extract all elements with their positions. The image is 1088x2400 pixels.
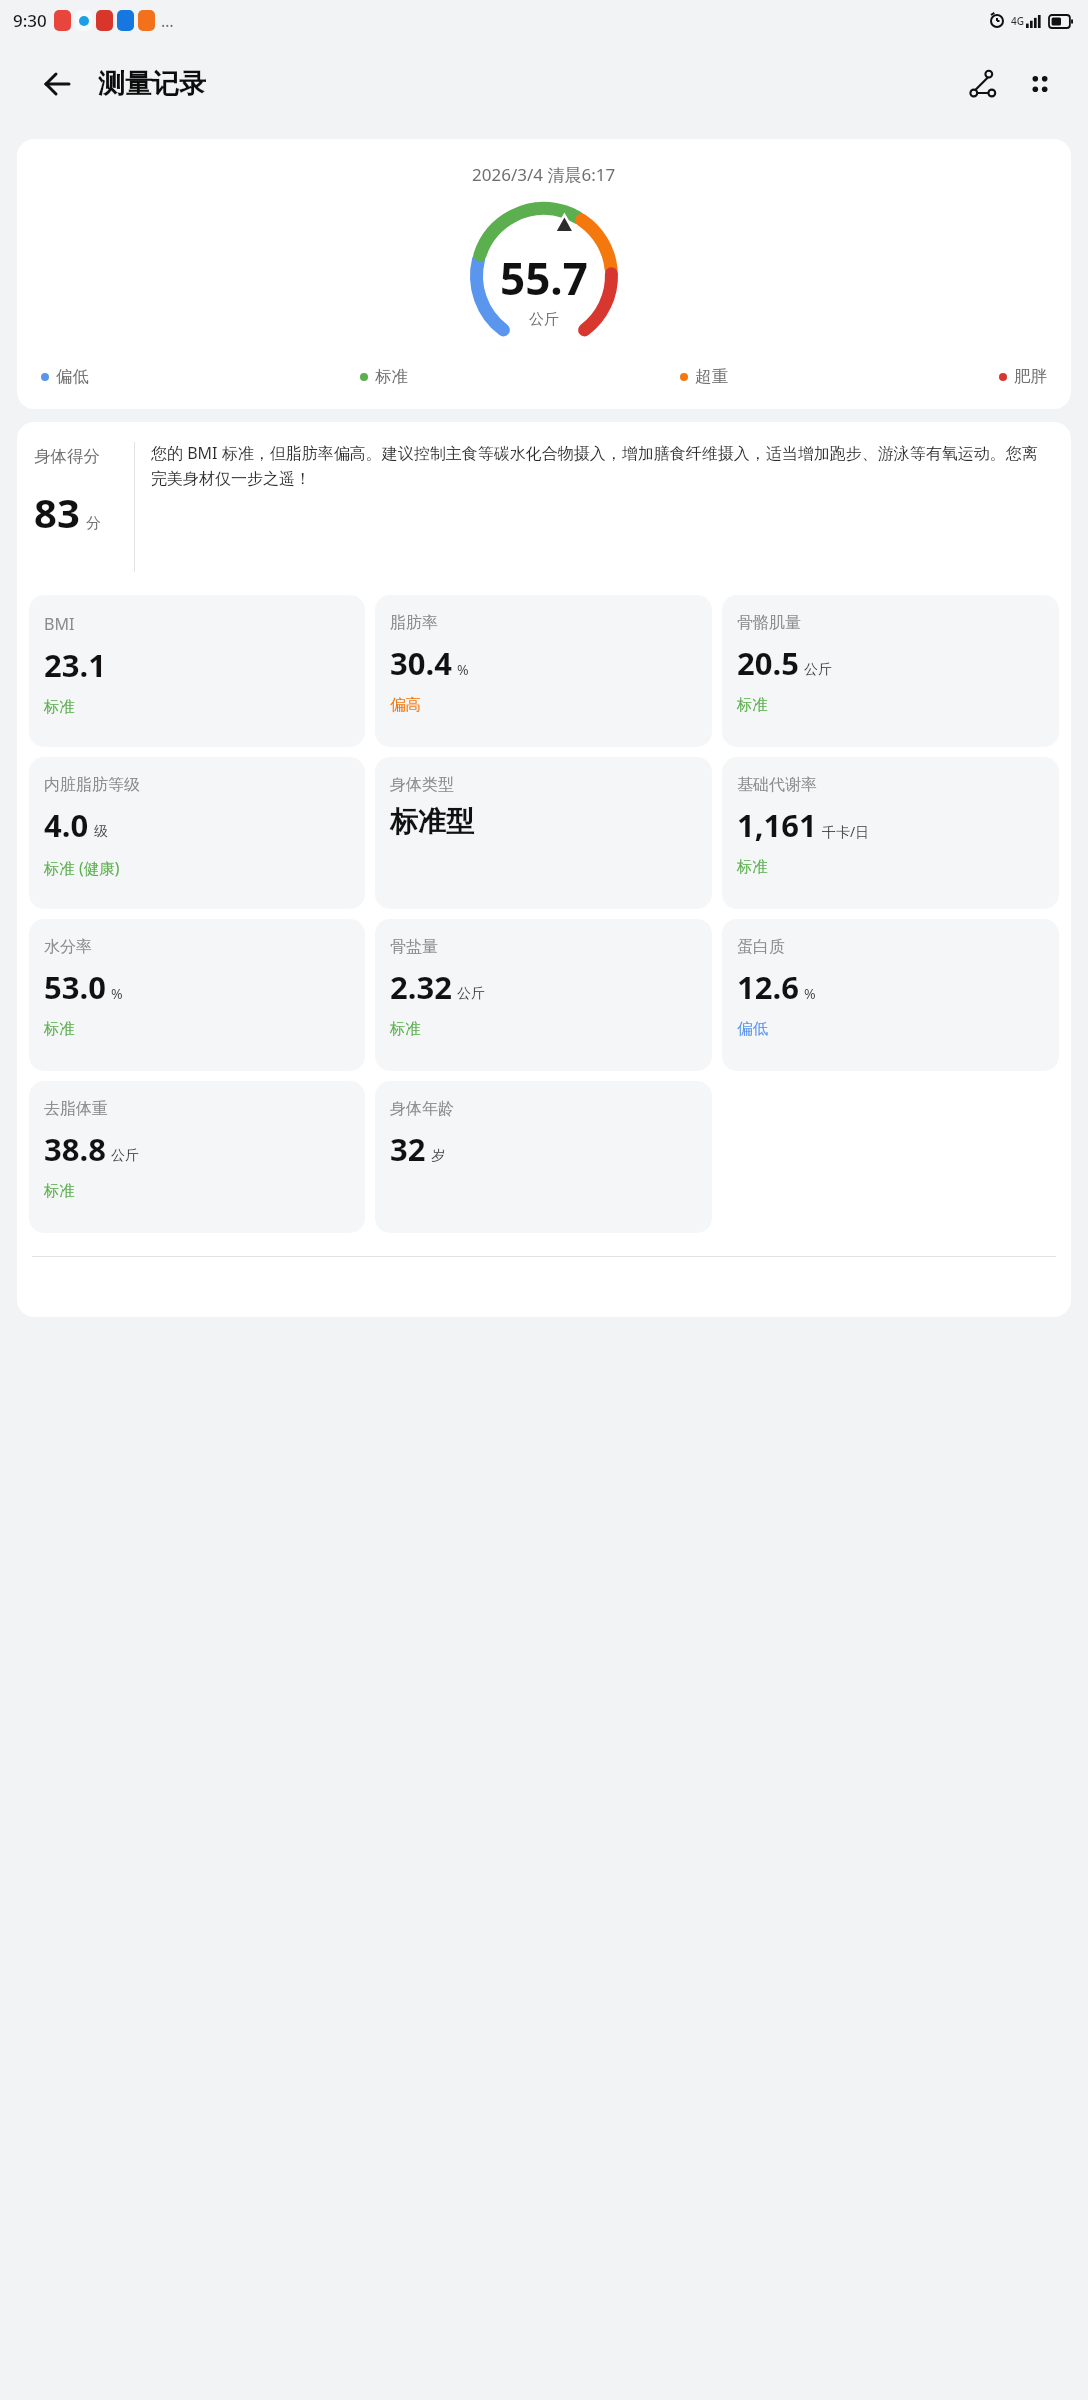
button[interactable]: 去脂体重 bbox=[29, 1081, 365, 1233]
staticText: 38.8 bbox=[44, 1128, 106, 1170]
staticText: 30.4 bbox=[390, 642, 452, 684]
staticText: 公斤 bbox=[457, 985, 485, 1003]
staticText: 2.32 bbox=[390, 966, 452, 1008]
staticText: 偏高 bbox=[390, 695, 421, 715]
staticText: 标准 bbox=[375, 366, 408, 387]
staticText: 标准 bbox=[44, 697, 75, 717]
staticText: 蛋白质 bbox=[737, 937, 785, 957]
button[interactable]: 内脏脂肪等级 bbox=[29, 757, 365, 909]
button[interactable]: 骨骼肌量 bbox=[722, 595, 1059, 747]
staticText: 标准型 bbox=[390, 804, 474, 839]
staticText: 身体类型 bbox=[390, 775, 454, 795]
staticText: 您的 BMI 标准，但脂肪率偏高。建议控制主食等碳水化合物摄入，增加膳食纤维摄入… bbox=[151, 442, 1052, 488]
staticText: 内脏脂肪等级 bbox=[44, 775, 140, 795]
staticText: % bbox=[457, 660, 469, 679]
button[interactable]: 脂肪率 bbox=[375, 595, 712, 747]
staticText: 测量记录 bbox=[98, 67, 206, 101]
staticText: 骨盐量 bbox=[390, 937, 438, 957]
staticText: 公斤 bbox=[529, 310, 559, 329]
staticText: 83 bbox=[34, 485, 80, 539]
staticText: 4G bbox=[1011, 14, 1024, 28]
staticText: 骨骼肌量 bbox=[737, 613, 801, 633]
staticText: 偏低 bbox=[56, 366, 89, 387]
staticText: 身体得分 bbox=[34, 446, 100, 467]
button[interactable]: 2026/3/4 清晨6:17 bbox=[17, 139, 1071, 409]
button[interactable]: 返回 bbox=[30, 57, 84, 111]
staticText: 脂肪率 bbox=[390, 613, 438, 633]
staticText: BMI bbox=[44, 613, 75, 635]
staticText: 岁 bbox=[431, 1147, 445, 1165]
button[interactable]: 骨盐量 bbox=[375, 919, 712, 1071]
button[interactable]: BMI bbox=[29, 595, 365, 747]
staticText: 20.5 bbox=[737, 642, 799, 684]
staticText: 标准 bbox=[44, 1019, 75, 1039]
staticText: 53.0 bbox=[44, 966, 106, 1008]
staticText: 23.1 bbox=[44, 644, 106, 686]
staticText: 分 bbox=[86, 514, 101, 533]
button[interactable]: 水分率 bbox=[29, 919, 365, 1071]
staticText: … bbox=[161, 10, 174, 32]
staticText: 水分率 bbox=[44, 937, 92, 957]
button[interactable]: 更多 bbox=[1014, 58, 1066, 110]
staticText: 9:30 bbox=[13, 9, 47, 32]
staticText: 32 bbox=[390, 1128, 426, 1170]
staticText: 标准 bbox=[44, 1181, 75, 1201]
staticText: 标准 bbox=[737, 857, 768, 877]
staticText: 超重 bbox=[695, 366, 728, 387]
staticText: 偏低 bbox=[737, 1019, 768, 1039]
staticText: 身体年龄 bbox=[390, 1099, 454, 1119]
staticText: 1,161 bbox=[737, 804, 817, 846]
staticText: % bbox=[111, 984, 123, 1003]
staticText: 标准 bbox=[390, 1019, 421, 1039]
staticText: % bbox=[804, 984, 816, 1003]
staticText: 55.7 bbox=[500, 248, 588, 308]
button[interactable]: 蛋白质 bbox=[722, 919, 1059, 1071]
staticText: 去脂体重 bbox=[44, 1099, 108, 1119]
staticText: 公斤 bbox=[111, 1147, 139, 1165]
staticText: 标准 bbox=[737, 695, 768, 715]
button[interactable]: 身体年龄 bbox=[375, 1081, 712, 1233]
staticText: 级 bbox=[94, 823, 108, 841]
button[interactable]: 基础代谢率 bbox=[722, 757, 1059, 909]
staticText: 基础代谢率 bbox=[737, 775, 817, 795]
staticText: 12.6 bbox=[737, 966, 799, 1008]
button[interactable]: 分享 bbox=[958, 58, 1010, 110]
staticText: 公斤 bbox=[804, 661, 832, 679]
staticText: 千卡/日 bbox=[822, 822, 870, 841]
staticText: 肥胖 bbox=[1014, 366, 1047, 387]
staticText: 2026/3/4 清晨6:17 bbox=[472, 163, 616, 186]
staticText: 4.0 bbox=[44, 804, 89, 846]
button[interactable]: 身体类型 bbox=[375, 757, 712, 909]
staticText: 标准 (健康) bbox=[44, 857, 120, 878]
